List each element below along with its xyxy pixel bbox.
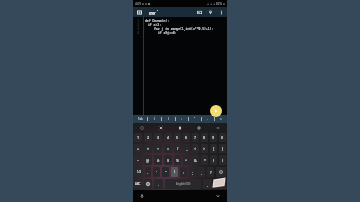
staticText: 4:09 xyxy=(135,2,141,6)
button[interactable]: . xyxy=(201,115,214,123)
button[interactable]: Suggestions xyxy=(206,7,215,17)
staticText: = xyxy=(167,146,170,151)
staticText: 3 xyxy=(133,27,139,31)
staticText: . xyxy=(158,182,159,187)
staticText: mv xyxy=(149,10,156,16)
button[interactable]: Backspace xyxy=(216,167,226,177)
button[interactable]: " xyxy=(162,167,169,177)
button[interactable]: ( xyxy=(210,155,217,165)
button[interactable]: " xyxy=(188,115,201,123)
staticText: def Dream(n): xyxy=(145,19,170,23)
button[interactable]: Sticker xyxy=(170,123,189,132)
button[interactable]: 5 xyxy=(174,133,181,142)
button[interactable]: [ xyxy=(210,144,217,153)
button[interactable]: 4 xyxy=(164,133,172,142)
button[interactable]: Clipboard xyxy=(133,123,151,132)
button[interactable]: # xyxy=(154,155,162,165)
staticText: = xyxy=(220,117,222,121)
staticText: , xyxy=(207,182,208,187)
button[interactable]: > xyxy=(201,144,208,153)
button[interactable]: 3 xyxy=(154,133,162,142)
staticText: ' xyxy=(156,170,157,175)
button[interactable]: ( xyxy=(147,115,161,123)
staticText: ] xyxy=(222,146,224,151)
button[interactable]: / xyxy=(174,144,181,153)
button[interactable]: Enter xyxy=(212,177,226,188)
button[interactable]: 7 xyxy=(192,133,199,142)
staticText: # xyxy=(157,158,160,163)
button[interactable]: & xyxy=(192,155,199,165)
staticText: ABC xyxy=(135,182,141,186)
button[interactable]: 2 xyxy=(144,133,152,142)
staticText: ) xyxy=(222,158,224,163)
button[interactable]: ' xyxy=(153,167,160,177)
staticText: ~ xyxy=(137,158,140,163)
button[interactable]: × xyxy=(144,144,152,153)
staticText: ; xyxy=(192,170,193,175)
staticText: ( xyxy=(154,117,155,121)
button[interactable]: Hide keyboard xyxy=(209,190,227,202)
button[interactable]: 0 xyxy=(219,133,226,142)
button[interactable]: ; xyxy=(189,167,196,177)
button[interactable]: ] xyxy=(219,144,226,153)
staticText: ^ xyxy=(185,158,188,163)
button[interactable]: < xyxy=(192,144,199,153)
staticText: if x>2: xyxy=(148,23,161,27)
button[interactable]: _ xyxy=(183,144,190,153)
button[interactable]: 9 xyxy=(210,133,217,142)
button[interactable]: Change language xyxy=(144,179,152,189)
staticText: , xyxy=(201,170,202,175)
button[interactable]: ? xyxy=(207,167,214,177)
staticText: 4 xyxy=(133,31,139,35)
staticText: . xyxy=(207,117,208,121)
button[interactable]: 1 xyxy=(134,133,142,142)
button[interactable]: @ xyxy=(144,155,152,165)
button[interactable]: . xyxy=(154,179,163,189)
button[interactable]: ABC xyxy=(134,179,142,189)
button[interactable]: More options xyxy=(217,7,225,17)
button[interactable]: % xyxy=(174,155,181,165)
button[interactable]: 6 xyxy=(183,133,190,142)
staticText: < xyxy=(194,146,197,151)
staticText: ÷ xyxy=(157,146,160,151)
button[interactable]: \ xyxy=(171,167,178,177)
button[interactable]: English (US) xyxy=(165,179,201,189)
staticText: * xyxy=(204,158,206,163)
staticText: 4 xyxy=(167,135,170,140)
button[interactable]: $ xyxy=(164,155,172,165)
button[interactable]: ^ xyxy=(183,155,190,165)
button[interactable]: ÷ xyxy=(154,144,162,153)
button[interactable]: ) xyxy=(161,115,175,123)
button[interactable]: Voice input xyxy=(133,190,151,202)
staticText: 1/2 xyxy=(137,170,141,174)
staticText: 2 xyxy=(133,23,139,27)
button[interactable]: 8 xyxy=(201,133,208,142)
button[interactable]: : xyxy=(175,115,188,123)
button[interactable]: , xyxy=(203,179,212,189)
button[interactable]: - xyxy=(145,167,151,177)
staticText: 82% xyxy=(216,2,222,6)
button[interactable]: = xyxy=(164,144,172,153)
staticText: ) xyxy=(168,117,169,121)
button[interactable]: 1/2 xyxy=(134,167,143,177)
button[interactable]: + xyxy=(134,144,142,153)
staticText: \ xyxy=(174,170,176,174)
button[interactable]: Emoji xyxy=(151,123,170,132)
button[interactable]: Settings xyxy=(189,123,208,132)
button[interactable]: Terminal xyxy=(195,7,204,17)
button[interactable]: Open navigation drawer xyxy=(135,7,143,17)
button[interactable]: , xyxy=(198,167,205,177)
button[interactable]: : xyxy=(180,167,187,177)
button[interactable]: More xyxy=(208,123,227,132)
button[interactable]: ) xyxy=(219,155,226,165)
button[interactable]: Enter xyxy=(214,179,226,189)
button[interactable]: Run xyxy=(210,105,222,117)
button[interactable]: = xyxy=(214,115,227,123)
button[interactable]: Tab xyxy=(133,115,147,123)
staticText: ( xyxy=(213,158,215,163)
staticText: 8 xyxy=(203,135,206,140)
staticText: 9 xyxy=(212,135,215,140)
button[interactable]: * xyxy=(201,155,208,165)
staticText: 3 xyxy=(157,135,160,140)
button[interactable]: ~ xyxy=(134,155,142,165)
